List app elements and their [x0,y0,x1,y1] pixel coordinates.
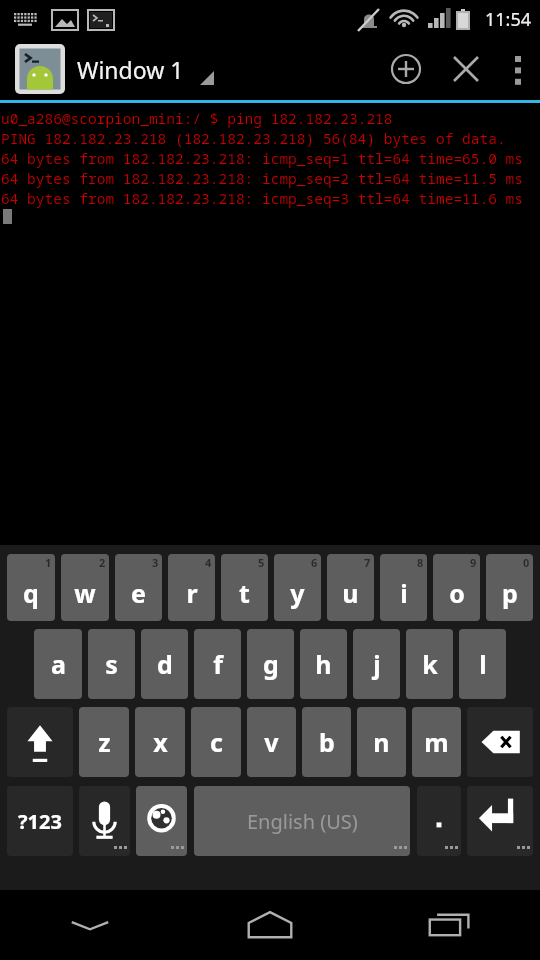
button[interactable]: Backspace [467,707,533,777]
staticText: c [210,725,223,759]
button[interactable]: Window 1 [0,44,214,94]
staticText: 64 bytes from 182.182.23.218: icmp_seq=1… [1,148,523,168]
staticText: u0_a286@scorpion_mini:/ $ ping 182.182.2… [1,108,393,128]
staticText: 7 [364,555,371,570]
button[interactable]: l [459,629,506,699]
button[interactable]: Change language [136,786,187,856]
staticText: i [400,576,408,610]
staticText: English (US) [247,808,358,835]
button[interactable]: Enter [467,786,533,856]
button[interactable]: English (US) [194,786,410,856]
staticText: 0 [523,555,530,570]
button[interactable]: n [357,707,406,777]
button[interactable]: New window [376,39,436,99]
staticText: t [239,576,250,610]
button[interactable]: d [141,629,188,699]
button[interactable]: 6 [274,554,321,621]
button[interactable]: c [191,707,241,777]
staticText: s [105,647,118,681]
button[interactable]: f [194,629,241,699]
staticText: 64 bytes from 182.182.23.218: icmp_seq=2… [1,168,523,188]
button[interactable]: 0 [486,554,533,621]
button[interactable]: Home [180,890,360,960]
button[interactable]: ?123 [7,786,73,856]
staticText: w [74,576,96,610]
staticText: 64 bytes from 182.182.23.218: icmp_seq=3… [1,188,523,208]
staticText: y [290,576,305,610]
staticText: z [98,725,111,759]
button[interactable]: 3 [115,554,162,621]
button[interactable]: k [406,629,453,699]
button[interactable]: 7 [327,554,374,621]
staticText: 11:54 [485,7,532,32]
staticText: k [422,647,438,681]
button[interactable]: 4 [168,554,215,621]
staticText: r [186,576,198,610]
button[interactable]: 5 [221,554,268,621]
button[interactable]: g [247,629,294,699]
staticText: b [319,725,335,759]
button[interactable]: 8 [380,554,427,621]
staticText: j [373,647,381,681]
staticText: 9 [470,555,477,570]
staticText: 1 [45,555,52,570]
staticText: q [23,576,39,610]
button[interactable]: z [79,707,129,777]
button[interactable]: a [34,629,82,699]
staticText: 5 [258,555,265,570]
staticText: v [264,725,279,759]
button[interactable]: b [302,707,351,777]
button[interactable]: Voice input [79,786,130,856]
staticText: p [502,576,518,610]
staticText: 3 [152,555,159,570]
staticText: l [479,647,487,681]
staticText: 8 [417,555,424,570]
button[interactable]: More options [496,39,540,99]
button[interactable]: Recent apps [360,890,540,960]
staticText: 6 [311,555,318,570]
staticText: x [153,725,168,759]
button[interactable]: Shift [7,707,73,777]
staticText: g [263,647,279,681]
button[interactable]: Hide keyboard [0,890,180,960]
staticText: PING 182.182.23.218 (182.182.23.218) 56(… [1,128,506,148]
staticText: o [449,576,465,610]
staticText: f [213,647,223,681]
button[interactable]: Close window [436,39,496,99]
button[interactable]: 2 [61,554,109,621]
staticText: e [131,576,146,610]
button[interactable]: 1 [7,554,55,621]
staticText: m [424,725,449,759]
button[interactable]: m [412,707,461,777]
button[interactable]: h [300,629,347,699]
staticText: 2 [99,555,106,570]
staticText: h [315,647,332,681]
staticText: Window 1 [77,54,184,85]
button[interactable]: Period [417,786,461,856]
staticText: a [51,647,66,681]
staticText: u [342,576,359,610]
staticText: d [157,647,173,681]
staticText: 4 [205,555,212,570]
staticText: n [373,725,390,759]
staticText: ?123 [18,808,62,835]
button[interactable]: 9 [433,554,480,621]
button[interactable]: x [135,707,185,777]
button[interactable]: v [247,707,296,777]
button[interactable]: j [353,629,400,699]
button[interactable]: s [88,629,135,699]
